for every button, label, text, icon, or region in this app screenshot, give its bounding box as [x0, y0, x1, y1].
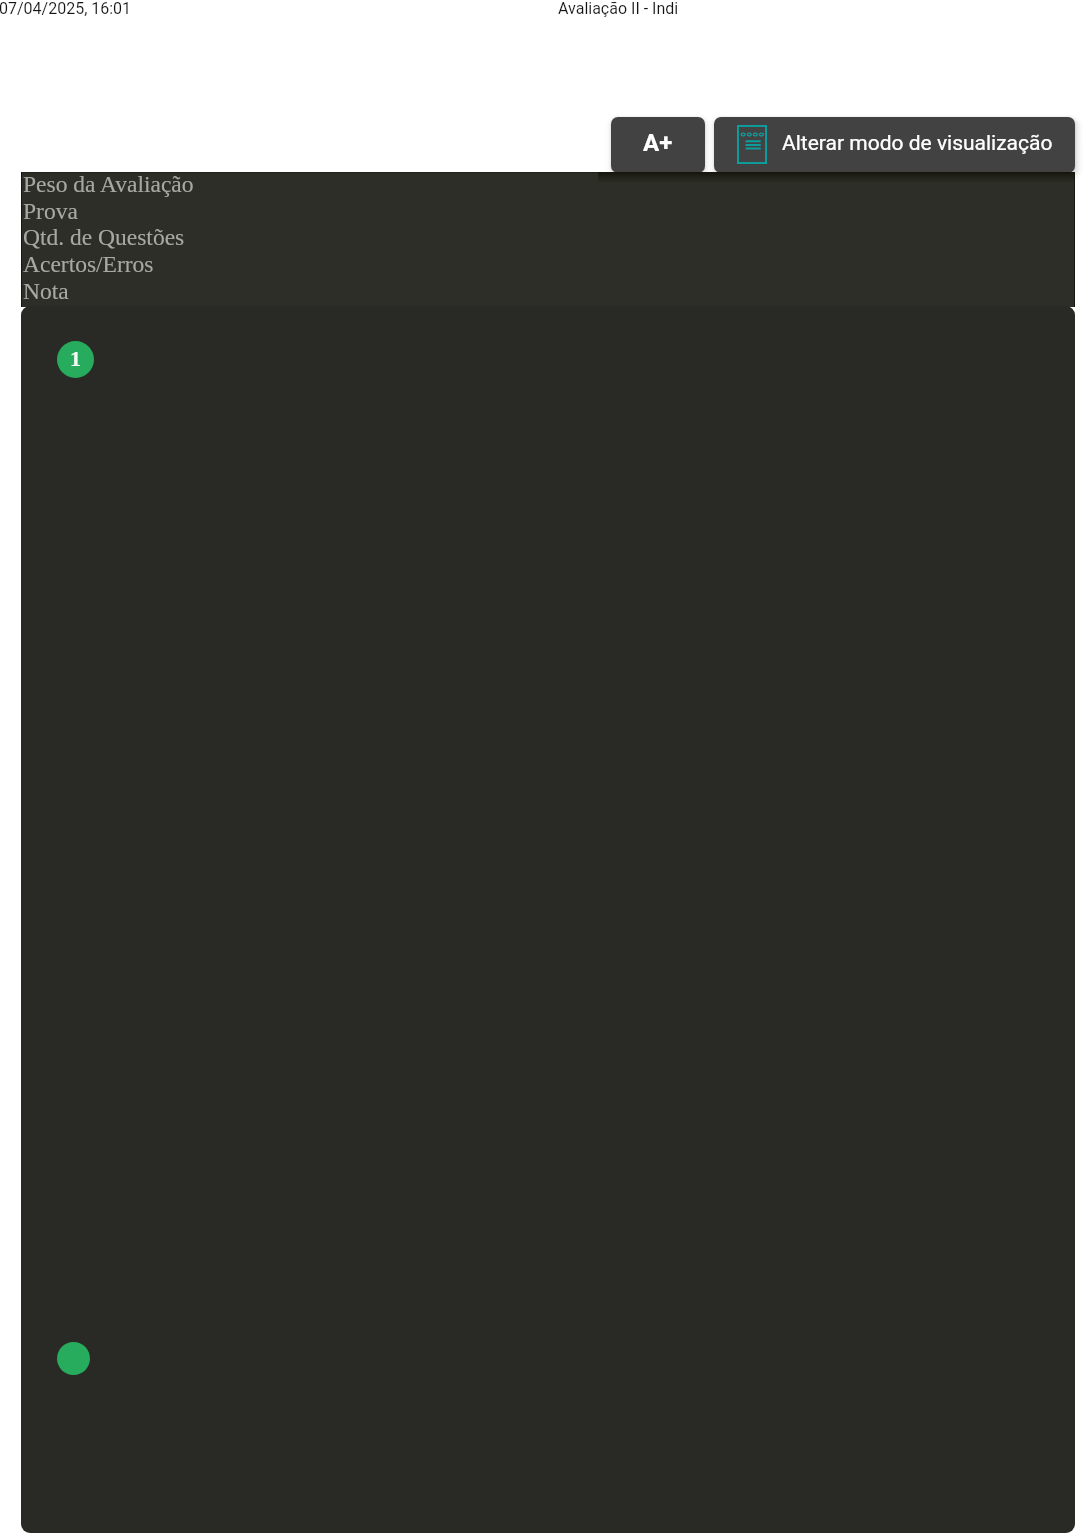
other: Alterar modo de visualização	[737, 125, 767, 164]
staticText: Avaliação II - Indi	[558, 0, 679, 18]
staticText: 07/04/2025, 16:01	[0, 0, 132, 18]
staticText: A+	[643, 129, 673, 157]
button[interactable]: 1	[57, 341, 94, 378]
staticText: Acertos/Erros	[23, 251, 154, 277]
button[interactable]: A+	[611, 117, 705, 173]
staticText: Qtd. de Questões	[23, 224, 185, 250]
staticText: Alterar modo de visualização	[782, 131, 1053, 156]
button[interactable]: Alterar modo de visualização	[714, 117, 1075, 173]
staticText: Nota	[23, 278, 69, 304]
button[interactable]: Status	[57, 1342, 90, 1375]
staticText: Prova	[23, 198, 78, 224]
staticText: Peso da Avaliação	[23, 171, 194, 197]
staticText: 1	[70, 346, 81, 370]
